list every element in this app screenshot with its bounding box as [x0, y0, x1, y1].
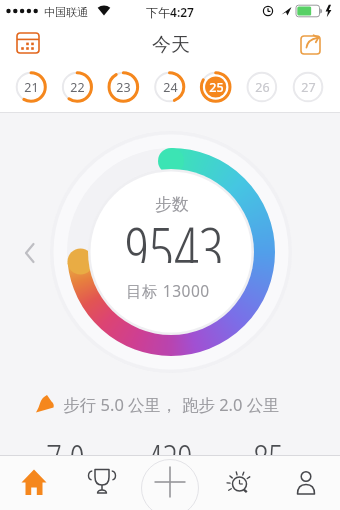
staticText: 25 [209, 79, 224, 96]
staticText: 9543 [124, 207, 224, 263]
staticText: 中国联通 [44, 5, 88, 19]
staticText: 24 [163, 79, 178, 96]
staticText: 目标 13000 [126, 280, 210, 300]
staticText: 23 [116, 79, 131, 96]
staticText: 今天 [152, 33, 190, 55]
staticText: 步行 5.0 公里， 跑步 2.0 公里 [63, 393, 280, 416]
staticText: 26 [255, 79, 270, 96]
staticText: 429 [147, 432, 193, 476]
staticText: 21 [24, 79, 39, 96]
staticText: 下午4:27 [146, 4, 194, 20]
staticText: 22 [70, 79, 85, 96]
staticText: 7.0 [46, 432, 85, 476]
staticText: 85 [253, 432, 284, 476]
staticText: 步数 [155, 194, 189, 214]
staticText: 27 [301, 79, 316, 96]
